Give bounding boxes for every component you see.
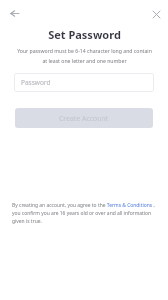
staticText: Set Password [48,27,121,42]
button[interactable]: Back [4,3,24,23]
button[interactable]: Password [14,73,154,92]
button[interactable]: By creating an account, you agree to the… [12,202,158,225]
staticText: Password [21,78,51,87]
staticText: By creating an account, you agree to the… [12,202,158,225]
button[interactable]: Close [146,4,166,24]
staticText: Your password must be 6-14 character lon… [16,47,153,64]
button[interactable]: Create Account [15,108,153,128]
staticText: Create Account [59,114,109,123]
